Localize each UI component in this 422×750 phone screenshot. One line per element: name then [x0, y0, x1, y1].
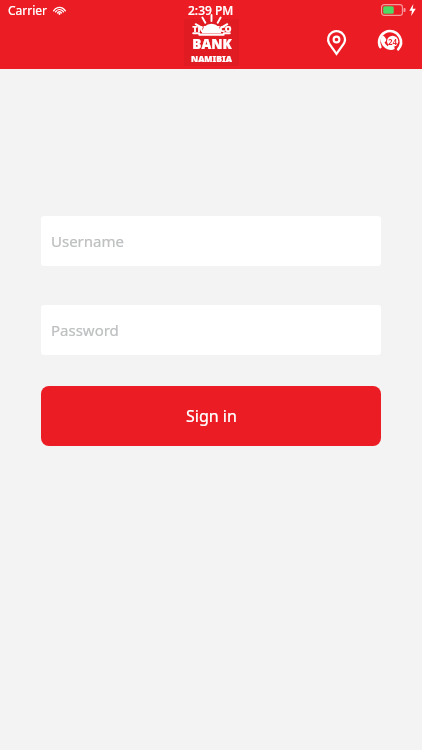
button[interactable]: Sign in [41, 386, 381, 446]
staticText: TRUSTCO [192, 23, 232, 35]
staticText: 2:39 PM [188, 2, 234, 18]
button[interactable]: Username [41, 216, 381, 266]
staticText: Sign in [186, 405, 237, 427]
staticText: 24 [388, 36, 398, 47]
button[interactable]: Password [41, 305, 381, 355]
staticText: Carrier [8, 2, 48, 18]
button[interactable]: Branch locator [318, 24, 354, 60]
staticText: Username [51, 231, 124, 251]
staticText: NAMIBIA [191, 53, 232, 65]
staticText: BANK [192, 35, 232, 53]
button[interactable]: Trustco Bank Namibia [184, 19, 239, 66]
staticText: Password [51, 320, 119, 340]
button[interactable]: 24 hour call centre [372, 24, 408, 60]
